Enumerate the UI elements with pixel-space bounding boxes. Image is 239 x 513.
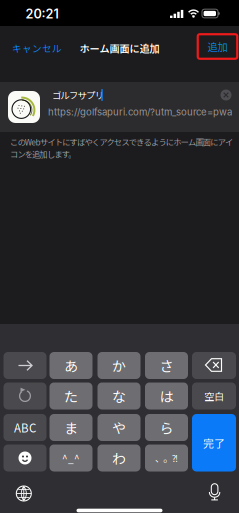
staticText: わ [112, 448, 126, 468]
button[interactable]: 、。?! [145, 444, 188, 471]
button[interactable]: ま [49, 414, 92, 441]
staticText: 完了 [203, 435, 225, 451]
button[interactable]: さ [145, 352, 188, 379]
button[interactable]: ABC [3, 414, 46, 441]
button[interactable]: Dictation [204, 482, 225, 503]
staticText: ゴルフサプリ [52, 88, 104, 102]
staticText: ま [64, 417, 78, 438]
button[interactable]: ら [145, 414, 188, 441]
button[interactable]: Delete [192, 352, 236, 379]
staticText: ホーム画面に追加 [79, 41, 159, 55]
button[interactable]: Next candidate [3, 352, 46, 379]
button[interactable]: 追加 [199, 36, 235, 57]
button[interactable]: Emoji [3, 444, 46, 471]
staticText: 追加 [207, 39, 227, 54]
staticText: ^_^ [62, 451, 80, 465]
staticText: 20:21 [25, 6, 58, 22]
staticText: た [64, 386, 78, 406]
staticText: このWebサイトにすばやくアクセスできるようにホーム画面にアイコンを追加します。 [10, 136, 233, 160]
staticText: ABC [14, 419, 36, 436]
button[interactable]: 完了 [192, 414, 236, 471]
button[interactable]: わ [97, 444, 140, 471]
staticText: キャンセル [12, 41, 62, 55]
button[interactable]: は [145, 382, 188, 409]
button[interactable]: Undo [3, 382, 46, 409]
staticText: 空白 [204, 389, 224, 403]
staticText: あ [64, 355, 78, 376]
staticText: ら [159, 417, 173, 438]
staticText: や [112, 417, 126, 438]
staticText: 、。?! [155, 451, 178, 465]
button[interactable]: Clear text [219, 88, 232, 101]
button[interactable]: Switch keyboard [13, 483, 34, 504]
button[interactable]: た [49, 382, 92, 409]
button[interactable]: ^_^ [49, 444, 92, 471]
staticText: か [112, 355, 126, 376]
staticText: さ [159, 355, 173, 376]
staticText: な [112, 386, 126, 406]
staticText: は [159, 386, 173, 406]
button[interactable]: あ [49, 352, 92, 379]
button[interactable]: か [97, 352, 140, 379]
button[interactable]: 空白 [192, 382, 236, 409]
button[interactable]: や [97, 414, 140, 441]
staticText: https://golfsapuri.com/?utm_source=pwa [48, 106, 232, 118]
button[interactable]: な [97, 382, 140, 409]
button[interactable]: キャンセル [0, 31, 72, 65]
